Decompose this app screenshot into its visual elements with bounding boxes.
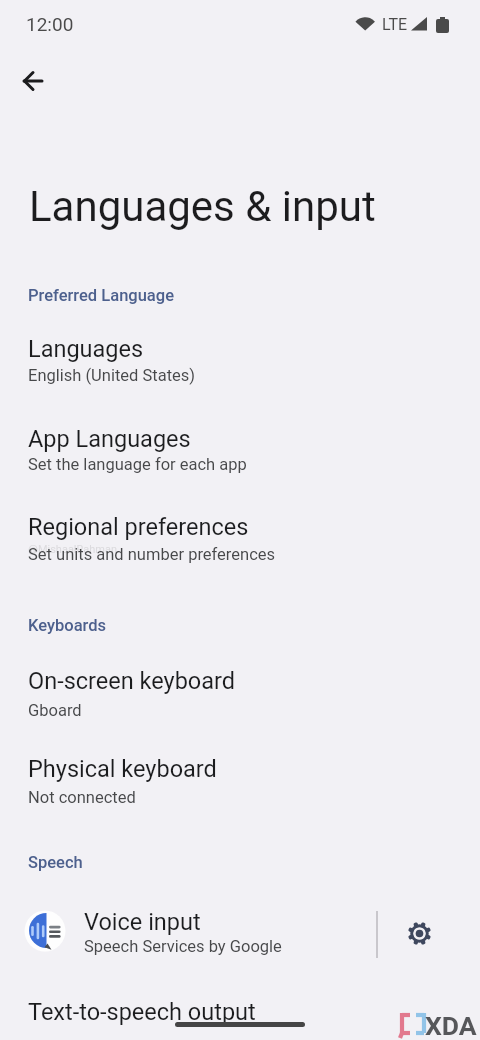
staticText: English (United States) <box>28 366 196 385</box>
staticText: Keyboards <box>28 616 107 635</box>
staticText: App Languages <box>28 425 191 453</box>
staticText: XDA <box>425 1010 477 1040</box>
staticText: Voice input <box>84 908 201 936</box>
staticText: @MishaalRahman <box>28 543 118 556</box>
staticText: Speech <box>28 853 83 872</box>
staticText: LTE <box>382 15 408 34</box>
staticText: Gboard <box>28 701 82 720</box>
staticText: On-screen keyboard <box>28 667 236 695</box>
staticText: 12:00 <box>26 13 74 35</box>
staticText: Speech Services by Google <box>84 937 282 956</box>
staticText: Text-to-speech output <box>28 998 256 1026</box>
staticText: Languages <box>28 335 144 363</box>
staticText: Set units and number preferences <box>28 545 276 564</box>
staticText: Preferred Language <box>28 286 175 305</box>
staticText: Languages & input <box>29 182 376 231</box>
staticText: Physical keyboard <box>28 755 217 783</box>
staticText: Not connected <box>28 788 136 807</box>
staticText: Set the language for each app <box>28 455 247 474</box>
staticText: Regional preferences <box>28 513 249 541</box>
